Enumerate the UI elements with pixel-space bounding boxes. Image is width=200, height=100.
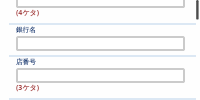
staticText: 銀行名 [16, 26, 36, 34]
staticText: (3ケタ) [16, 83, 40, 93]
staticText: (4ケタ) [16, 8, 40, 18]
staticText: 店番号 [16, 58, 36, 66]
other: Scroll position [194, 0, 200, 24]
button[interactable]: 店番号 入力欄 [16, 68, 185, 83]
button[interactable]: 口座番号 入力欄 [16, 0, 185, 8]
button[interactable]: 銀行名 入力欄 [16, 36, 185, 51]
